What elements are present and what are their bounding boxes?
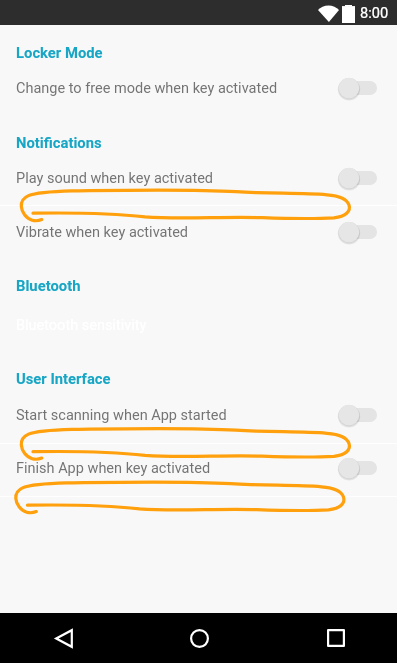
staticText: 8:00 [360,4,389,21]
staticText: Locker Mode [16,44,103,61]
button[interactable]: Home [155,613,243,663]
staticText: Play sound when key activated [16,170,338,187]
staticText: Change to free mode when key activated [16,80,338,97]
button[interactable]: Back [20,613,108,663]
staticText: User Interface [16,370,111,387]
staticText: Notifications [16,134,102,151]
button[interactable]: Change to free mode when key activated [0,62,397,114]
button[interactable]: Play sound when key activated [0,152,397,204]
staticText: Start scanning when App started [16,407,338,424]
button[interactable]: Recent apps [291,613,379,663]
button[interactable]: Finish App when key activated [0,442,397,494]
button[interactable]: Vibrate when key activated [0,206,397,258]
staticText: Vibrate when key activated [16,224,338,241]
button[interactable]: Start scanning when App started [0,389,397,441]
staticText: Finish App when key activated [16,460,338,477]
staticText: Bluetooth [16,277,81,294]
